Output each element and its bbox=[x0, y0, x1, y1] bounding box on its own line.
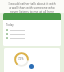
button[interactable] bbox=[3, 13, 61, 20]
staticText: 72% bbox=[18, 57, 24, 61]
staticText: I would rather talk about it with a wall… bbox=[1, 2, 63, 14]
button[interactable] bbox=[3, 32, 61, 36]
button[interactable] bbox=[3, 36, 61, 40]
staticText: Today bbox=[6, 23, 14, 27]
button[interactable]: Add bbox=[29, 64, 34, 69]
button[interactable] bbox=[3, 28, 61, 32]
